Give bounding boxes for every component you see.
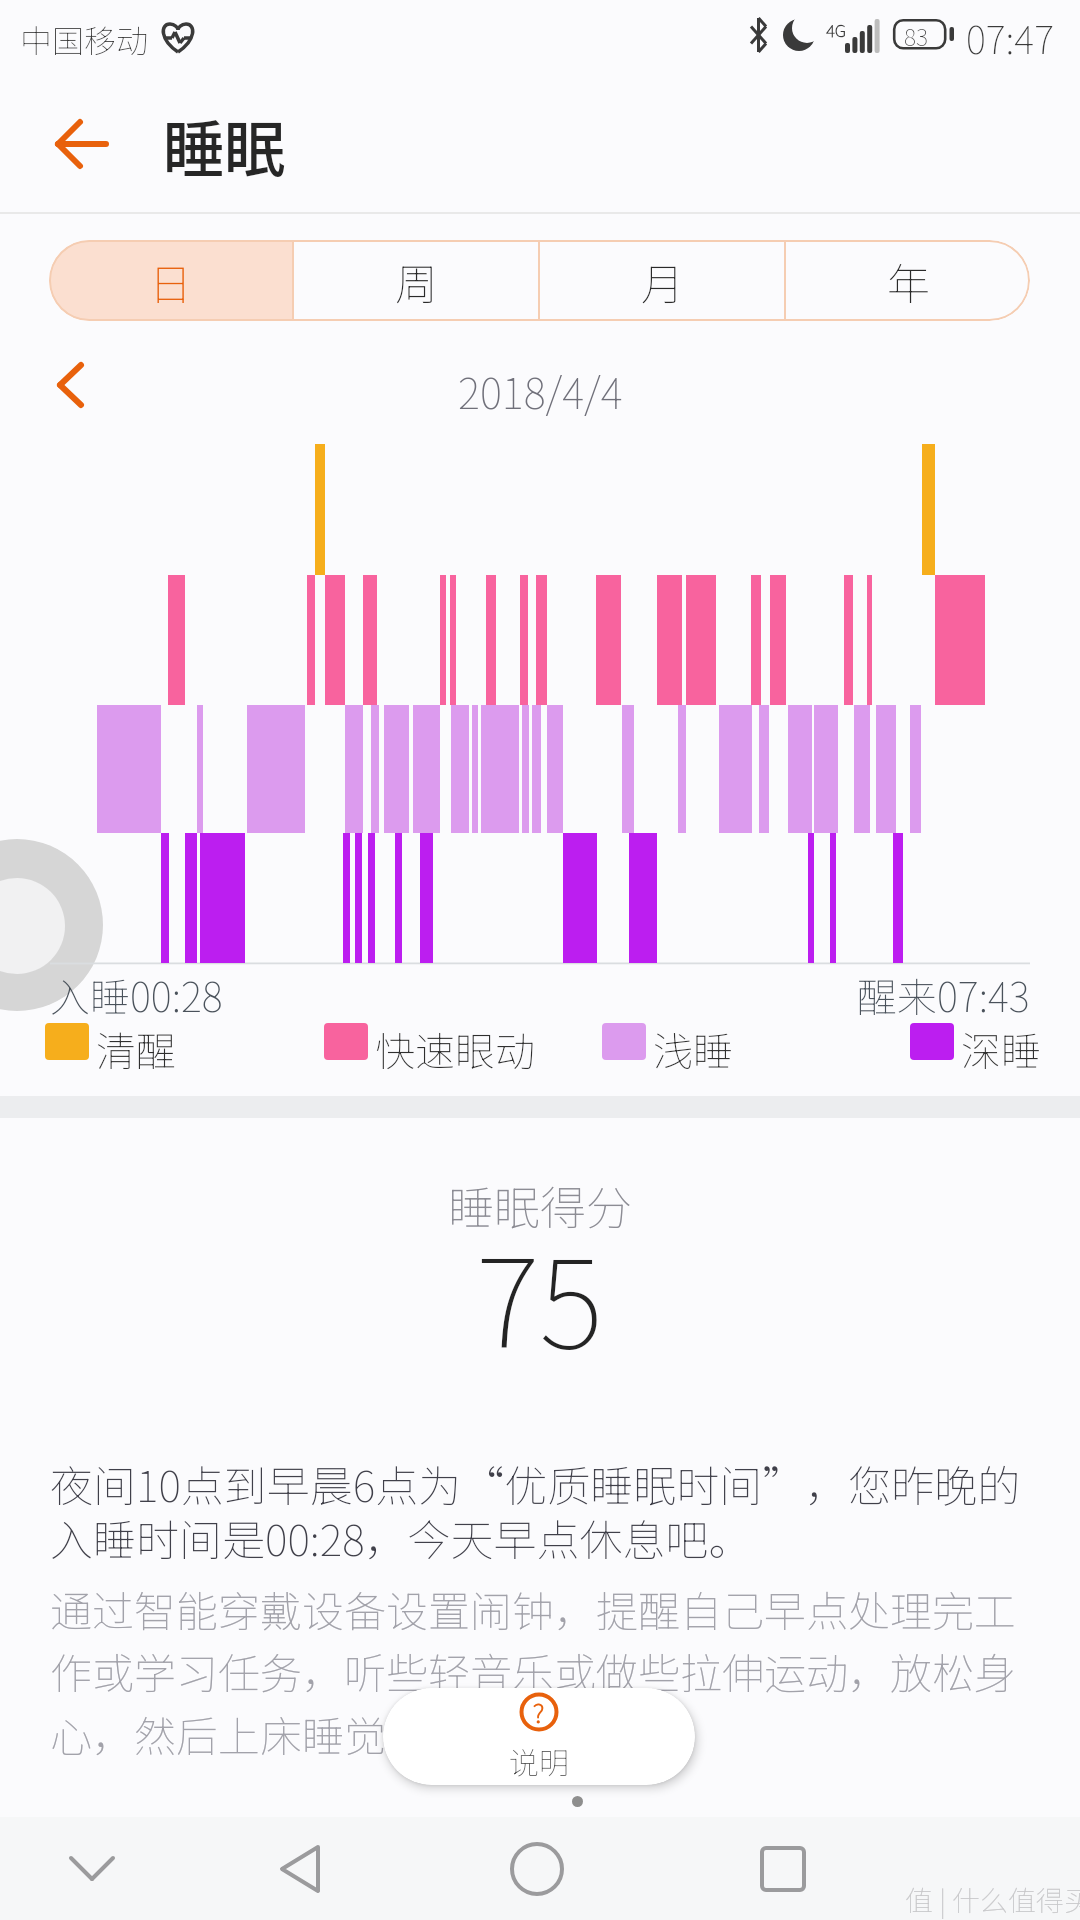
staticText: 通过智能穿戴设备设置闹钟，提醒自己早点处理完工作或学习任务，听些轻音乐或做些拉伸…: [50, 1578, 1030, 1765]
staticText: 中国移动: [20, 16, 149, 62]
staticText: 夜间10点到早晨6点为“优质睡眠时间”，您昨晚的入睡时间是00:28，今天早点休…: [50, 1452, 1030, 1569]
staticText: 醒来07:43: [857, 966, 1030, 1024]
staticText: 值 | 什么值得买: [905, 1879, 1080, 1920]
staticText: 83: [904, 19, 928, 51]
staticText: 说明: [509, 1739, 569, 1782]
staticText: 睡眠: [163, 101, 286, 189]
staticText: 月: [641, 250, 684, 312]
button[interactable]: [255, 1827, 345, 1910]
staticText: 年: [887, 250, 930, 312]
staticText: ?: [533, 1693, 545, 1731]
staticText: 清醒: [96, 1020, 176, 1078]
staticText: 4G: [826, 17, 847, 42]
staticText: 快速眼动: [375, 1020, 535, 1078]
staticText: 周: [395, 250, 438, 312]
staticText: 2018/4/4: [458, 360, 623, 421]
button[interactable]: 月: [540, 240, 784, 321]
button[interactable]: [40, 104, 124, 184]
button[interactable]: [52, 1827, 132, 1910]
button[interactable]: 日: [49, 240, 292, 321]
staticText: 入睡00:28: [50, 966, 223, 1024]
button[interactable]: [738, 1827, 828, 1910]
staticText: 75: [476, 1206, 604, 1383]
staticText: 睡眠得分: [448, 1172, 632, 1239]
button[interactable]: 周: [294, 240, 538, 321]
staticText: 深睡: [961, 1020, 1041, 1078]
staticText: 日: [149, 250, 192, 312]
button[interactable]: [492, 1827, 582, 1910]
staticText: 浅睡: [653, 1020, 733, 1078]
button[interactable]: 年: [786, 240, 1030, 321]
staticText: 07:47: [966, 10, 1054, 65]
button[interactable]: [40, 352, 100, 418]
button[interactable]: ?: [383, 1688, 695, 1785]
